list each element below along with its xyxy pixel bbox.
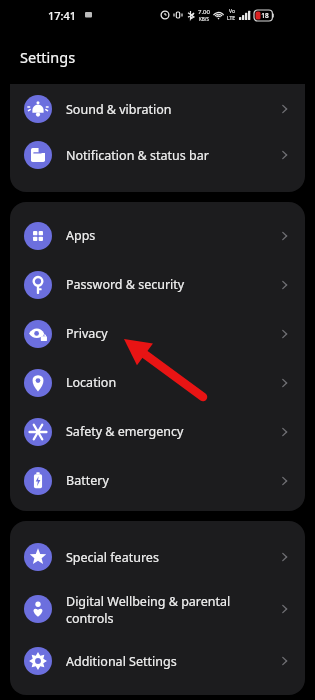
button[interactable]: Sound & vibration <box>10 86 305 132</box>
staticText: Sound & vibration <box>66 101 172 118</box>
staticText: KB/S <box>199 16 209 22</box>
button[interactable]: Battery <box>10 456 305 505</box>
button[interactable]: Location <box>10 358 305 407</box>
staticText: Vo <box>229 8 235 15</box>
staticText: Settings <box>20 47 76 67</box>
staticText: Battery <box>66 472 109 489</box>
staticText: Notification & status bar <box>66 147 209 164</box>
staticText: Safety & emergency <box>66 423 184 440</box>
staticText: Apps <box>66 227 96 244</box>
staticText: 17:41 <box>48 8 77 23</box>
button[interactable]: Safety & emergency <box>10 407 305 456</box>
staticText: Privacy <box>66 325 108 342</box>
button[interactable]: Digital Wellbeing & parental controls <box>10 581 305 637</box>
button[interactable]: Apps <box>10 211 305 260</box>
button[interactable]: Privacy <box>10 309 305 358</box>
staticText: Location <box>66 374 117 391</box>
staticText: Special features <box>66 549 159 566</box>
staticText: Digital Wellbeing & parental controls <box>66 593 231 626</box>
button[interactable]: Additional Settings <box>10 637 305 685</box>
staticText: Password & security <box>66 276 185 293</box>
button[interactable]: Password & security <box>10 260 305 309</box>
staticText: 7.00 <box>198 8 210 16</box>
button[interactable]: Special features <box>10 533 305 581</box>
button[interactable]: Notification & status bar <box>10 132 305 178</box>
staticText: 18 <box>261 11 269 20</box>
staticText: LTE <box>227 15 236 22</box>
staticText: Additional Settings <box>66 653 177 670</box>
